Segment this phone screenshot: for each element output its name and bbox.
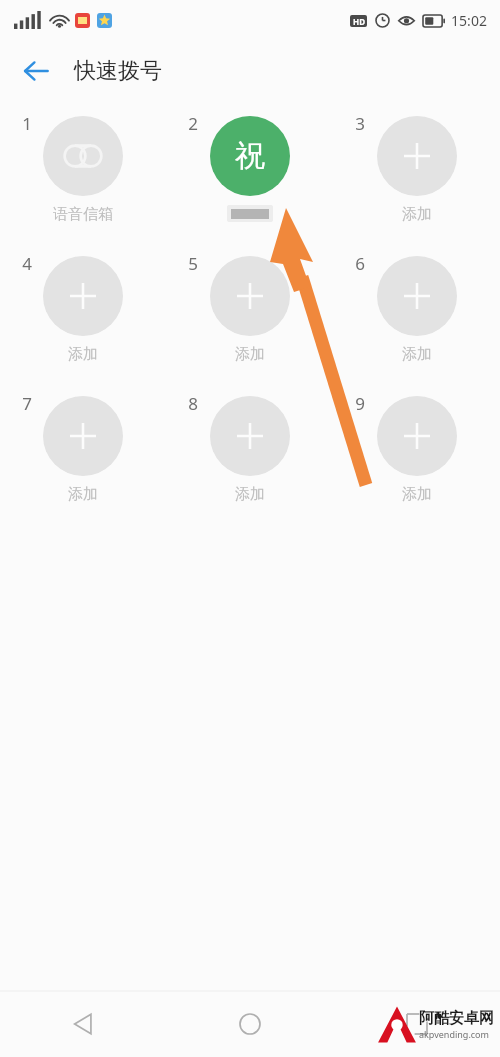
staticText: 祝 [235,137,265,175]
staticText: 快速拨号 [74,57,162,85]
staticText: 3 [355,112,365,135]
staticText: HD [353,16,365,27]
staticText: 1 [22,112,32,135]
staticText: 添加 [68,485,98,504]
staticText: 2 [188,112,198,135]
staticText: 添加 [68,345,98,364]
staticText: 5 [188,252,198,275]
button[interactable]: Recents [333,991,500,1057]
staticText: 7 [22,392,32,415]
staticText: 语音信箱 [53,205,113,224]
button[interactable]: 9 [333,388,500,528]
staticText: 8 [188,392,198,415]
button[interactable]: Back [12,47,60,95]
staticText: 添加 [235,345,265,364]
staticText: 添加 [402,345,432,364]
staticText: 9 [355,392,365,415]
staticText: 添加 [402,205,432,224]
button[interactable]: 5 [166,248,333,388]
button[interactable]: 7 [0,388,166,528]
staticText: 4 [22,252,32,275]
staticText: 15:02 [451,11,487,30]
button[interactable]: 8 [166,388,333,528]
button[interactable]: 2 [166,108,333,248]
staticText: 添加 [235,485,265,504]
button[interactable]: 3 [333,108,500,248]
staticText: 添加 [402,485,432,504]
button[interactable]: Back [0,991,166,1057]
button[interactable]: 1 [0,108,166,248]
button[interactable]: 6 [333,248,500,388]
button[interactable]: Home [166,991,333,1057]
button[interactable]: 4 [0,248,166,388]
staticText: 阿酷安卓网 [419,1009,494,1028]
staticText: akpvending.com [419,1028,489,1040]
staticText: 6 [355,252,365,275]
